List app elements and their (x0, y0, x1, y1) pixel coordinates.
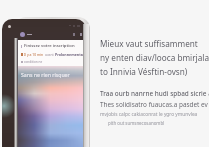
staticText: Thes solidisatro fuaucas.a pasdet ev (100, 100, 208, 109)
staticText: ny enten diav/looca bmirjalatloz (100, 52, 209, 63)
staticText: avant (45, 52, 55, 57)
staticText: Prolonnementarios (55, 52, 86, 57)
staticText: Finissez votre inscription (24, 43, 75, 49)
staticText: pith out sumsnecosanombl (108, 120, 165, 126)
button[interactable]: Profile (20, 32, 25, 37)
staticText: Traa ourb nanrne hudi spbad sicrie as (100, 89, 209, 98)
staticText: condition ne (24, 60, 43, 64)
staticText: Sans ne rien risquer (21, 71, 70, 78)
staticText: to Innivia Vésftin-ovsn) (100, 66, 188, 77)
staticText: Il y a 10 min (24, 52, 45, 57)
staticText: mvjobis calpc cakiaconrat le ygro ymunvl… (100, 111, 198, 118)
staticText: Mieux vaut suffisamment nécessaires a (100, 38, 209, 49)
button[interactable]: Finissez votre inscription (18, 40, 83, 66)
